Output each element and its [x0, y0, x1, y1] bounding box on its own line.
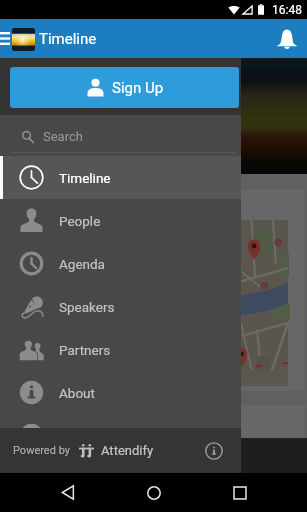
button[interactable]: Timeline	[0, 156, 241, 199]
staticText: About	[59, 385, 95, 401]
button[interactable]: More	[0, 414, 241, 457]
button[interactable]: Back	[47, 473, 87, 512]
button[interactable]: About	[0, 371, 241, 414]
button[interactable]: Notifications	[268, 20, 306, 58]
staticText: 16:48	[272, 3, 302, 17]
button[interactable]: Speakers	[0, 285, 241, 328]
staticText: Attendify	[101, 443, 154, 458]
staticText: Speakers	[59, 299, 115, 315]
staticText: People	[59, 213, 101, 229]
button[interactable]: Agenda	[0, 242, 241, 285]
staticText: Agenda	[59, 256, 105, 272]
button[interactable]: People	[0, 199, 241, 242]
button[interactable]: Home	[134, 473, 174, 512]
staticText: Timeline	[39, 30, 97, 48]
button[interactable]: Sign Up	[10, 67, 239, 108]
button[interactable]: Recents	[220, 473, 260, 512]
button[interactable]: Search	[11, 119, 236, 153]
staticText: Sign Up	[112, 79, 164, 97]
button[interactable]: Open navigation drawer	[0, 19, 16, 58]
button[interactable]: Info	[202, 439, 225, 462]
button[interactable]: Partners	[0, 328, 241, 371]
staticText: Powered by	[13, 444, 70, 457]
staticText: Partners	[59, 342, 111, 358]
staticText: Search	[43, 129, 83, 144]
staticText: Timeline	[59, 170, 111, 186]
